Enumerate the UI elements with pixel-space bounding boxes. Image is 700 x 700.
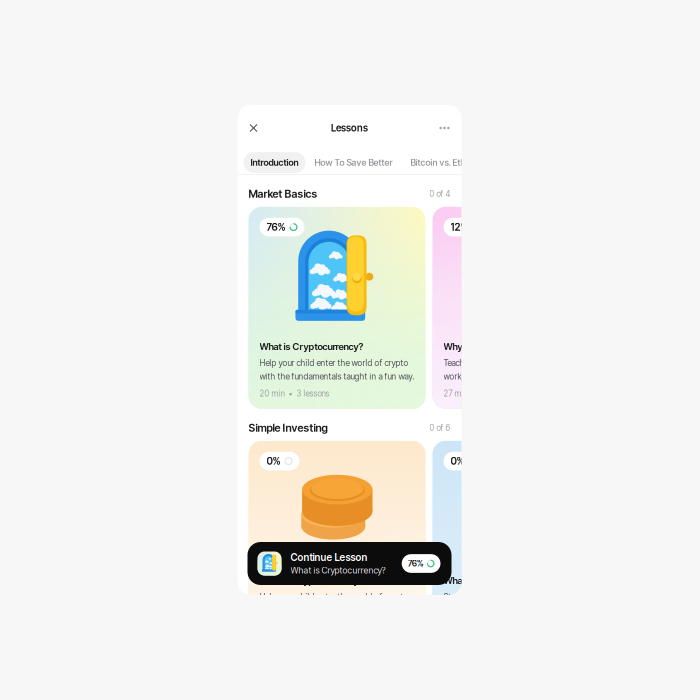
staticText: Simple Investing (248, 421, 327, 434)
staticText: 0% (450, 455, 464, 467)
staticText: Start with the basics of saving (443, 592, 554, 602)
staticText: What is Cryptocurrency? (259, 575, 363, 586)
button[interactable]: 0% (248, 441, 425, 643)
staticText: Lessons (331, 122, 368, 134)
button[interactable]: Bitcoin vs. Ethereum (401, 152, 500, 173)
staticText: Help your child enter the world of crypt… (259, 358, 408, 368)
staticText: Market Basics (248, 187, 317, 200)
staticText: What is Money? (443, 575, 509, 586)
staticText: 76% (408, 558, 424, 569)
staticText: 20 min • 3 lessons (259, 389, 329, 398)
staticText: work, and why they matter today. (443, 371, 564, 382)
button[interactable]: How To Save Better (305, 152, 401, 173)
staticText: Help your child enter the world of crypt… (259, 592, 408, 602)
staticText: How To Save Better (314, 157, 392, 168)
staticText: 27 min • 4 lessons (443, 389, 512, 398)
staticText: 76% (266, 221, 285, 233)
button[interactable]: More options (433, 117, 455, 139)
staticText: 0 of 4 (429, 189, 450, 199)
staticText: What is Cryptocurrency? (290, 565, 385, 576)
button[interactable]: 76% (248, 207, 425, 409)
button[interactable]: Close (242, 117, 264, 139)
staticText: What is Cryptocurrency? (259, 341, 363, 352)
staticText: Introduction (250, 157, 298, 168)
staticText: 12% (450, 221, 468, 233)
button[interactable]: Continue Lesson (247, 542, 451, 585)
staticText: Teach them how markets really (443, 358, 554, 368)
staticText: 0% (266, 455, 280, 467)
staticText: with the fundamentals taught in a fun wa… (259, 371, 414, 382)
button[interactable]: 0% (432, 441, 609, 643)
staticText: Why Crypto Matters (443, 341, 528, 352)
staticText: Continue Lesson (290, 551, 367, 563)
button[interactable]: Introduction (243, 152, 305, 173)
staticText: 0 of 6 (429, 423, 450, 433)
button[interactable]: 12% (432, 207, 609, 409)
staticText: Bitcoin vs. Ethereum (410, 157, 491, 168)
